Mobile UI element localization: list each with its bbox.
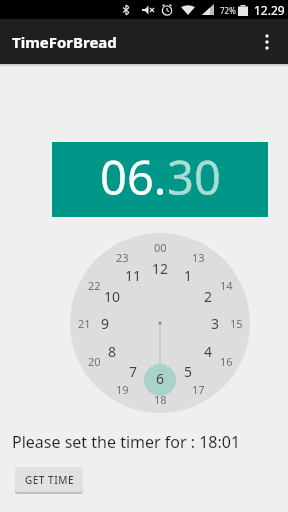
staticText: 2 (204, 287, 213, 306)
staticText: 12.29 (254, 2, 285, 18)
staticText: 12 (152, 259, 169, 278)
staticText: 5 (184, 362, 193, 381)
staticText: 23 (116, 250, 129, 265)
staticText: 22 (88, 278, 101, 293)
staticText: 9 (101, 314, 110, 333)
staticText: 3 (211, 314, 220, 333)
staticText: 30 (167, 145, 221, 209)
staticText: 21 (78, 316, 91, 331)
staticText: 00 (154, 240, 167, 255)
button[interactable]: GET TIME (15, 467, 83, 492)
staticText: 13 (192, 250, 205, 265)
staticText: 14 (220, 278, 233, 293)
staticText: Please set the timer for : 18:01 (12, 431, 241, 453)
staticText: 72% (220, 5, 236, 16)
staticText: 8 (108, 342, 117, 361)
staticText: 20 (88, 354, 101, 369)
staticText: 16 (220, 354, 233, 369)
staticText: GET TIME (25, 473, 74, 487)
staticText: 11 (125, 266, 142, 285)
staticText: 06. (100, 145, 167, 209)
staticText: 19 (116, 382, 129, 397)
staticText: 18 (154, 392, 167, 407)
staticText: TimeForBread (12, 32, 117, 52)
staticText: 17 (192, 382, 205, 397)
staticText: 15 (230, 316, 243, 331)
staticText: 7 (129, 362, 138, 381)
staticText: 1 (184, 266, 193, 285)
staticText: 10 (104, 287, 121, 306)
staticText: 6 (156, 369, 165, 388)
button[interactable] (254, 29, 280, 55)
staticText: 4 (204, 342, 213, 361)
